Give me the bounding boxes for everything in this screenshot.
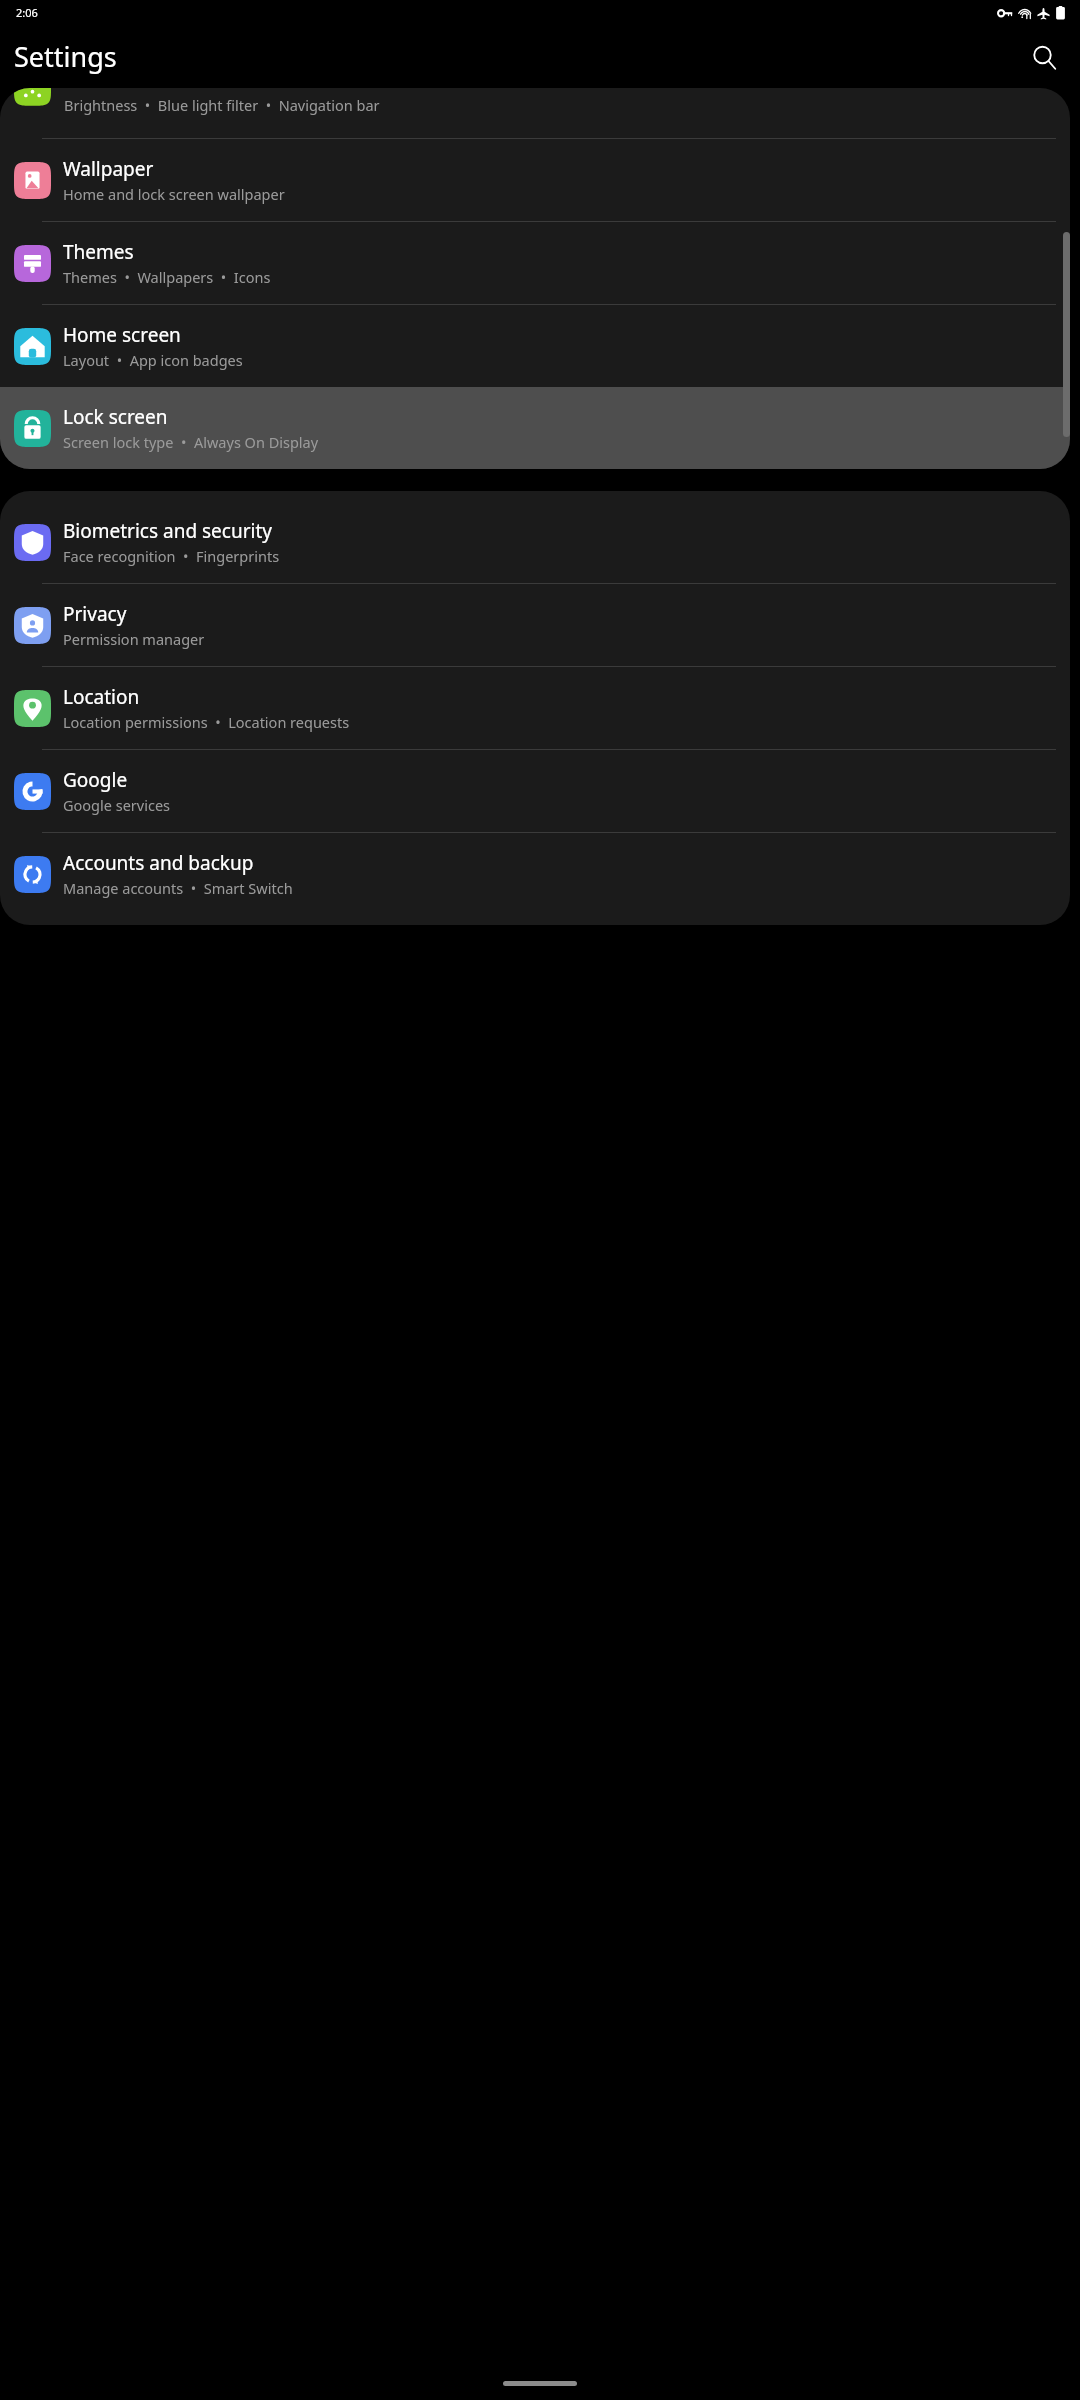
staticText: Brightness • Blue light filter • Navigat… [64, 95, 380, 115]
staticText: Location [63, 684, 140, 710]
staticText: Lock screen [63, 404, 168, 430]
staticText: Location permissions • Location requests [63, 712, 350, 732]
staticText: Google services [63, 795, 171, 815]
button[interactable]: Lock screen [0, 387, 1070, 469]
staticText: Themes [63, 239, 134, 265]
button[interactable]: Privacy [0, 584, 1070, 666]
button[interactable]: Location [0, 667, 1070, 749]
staticText: Face recognition • Fingerprints [63, 546, 280, 566]
button[interactable]: Wallpaper [0, 139, 1070, 221]
staticText: Settings [14, 38, 117, 75]
button[interactable]: Biometrics and security [0, 501, 1070, 583]
staticText: Themes • Wallpapers • Icons [63, 267, 271, 287]
staticText: Permission manager [63, 629, 205, 649]
staticText: Home and lock screen wallpaper [63, 184, 285, 204]
staticText: Screen lock type • Always On Display [63, 432, 319, 452]
staticText: Google [63, 767, 128, 793]
staticText: Home screen [63, 322, 181, 348]
staticText: Biometrics and security [63, 518, 273, 544]
button[interactable]: Google [0, 750, 1070, 832]
button[interactable]: Search [1020, 33, 1068, 81]
button[interactable]: Home screen [0, 305, 1070, 387]
staticText: Layout • App icon badges [63, 350, 243, 370]
staticText: Manage accounts • Smart Switch [63, 878, 293, 898]
button[interactable]: Brightness • Blue light filter • Navigat… [0, 88, 1070, 128]
button[interactable]: Accounts and backup [0, 833, 1070, 915]
button[interactable]: Themes [0, 222, 1070, 304]
staticText: Privacy [63, 601, 127, 627]
staticText: 2:06 [16, 5, 38, 20]
staticText: Accounts and backup [63, 850, 254, 876]
staticText: Wallpaper [63, 156, 154, 182]
